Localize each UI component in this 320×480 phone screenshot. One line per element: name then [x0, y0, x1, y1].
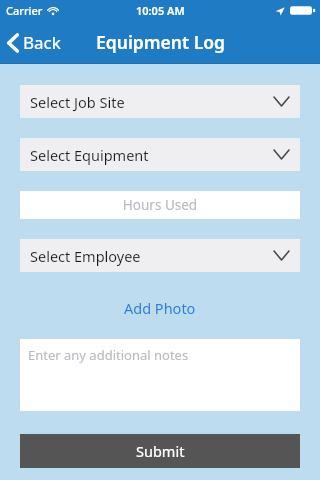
button[interactable]: Select Job Site	[20, 85, 300, 118]
button[interactable]: Select Equipment	[20, 138, 300, 171]
staticText: Carrier	[6, 3, 43, 18]
staticText: Select Employee	[30, 246, 141, 266]
button[interactable]: Back	[0, 25, 71, 60]
staticText: 10:05 AM	[136, 3, 185, 18]
staticText: Enter any additional notes	[28, 346, 189, 364]
staticText: Hours Used	[20, 196, 300, 214]
staticText: Back	[23, 31, 61, 54]
button[interactable]: Enter any additional notes	[20, 339, 300, 411]
button[interactable]: Hours Used	[20, 191, 300, 219]
staticText: Select Job Site	[30, 92, 125, 112]
button[interactable]: Add Photo	[112, 295, 208, 321]
button[interactable]: Submit	[20, 434, 300, 468]
staticText: Select Equipment	[30, 145, 149, 165]
staticText: Submit	[136, 441, 185, 461]
staticText: Equipment Log	[96, 30, 225, 54]
staticText: Add Photo	[124, 298, 196, 318]
button[interactable]: Select Employee	[20, 239, 300, 272]
